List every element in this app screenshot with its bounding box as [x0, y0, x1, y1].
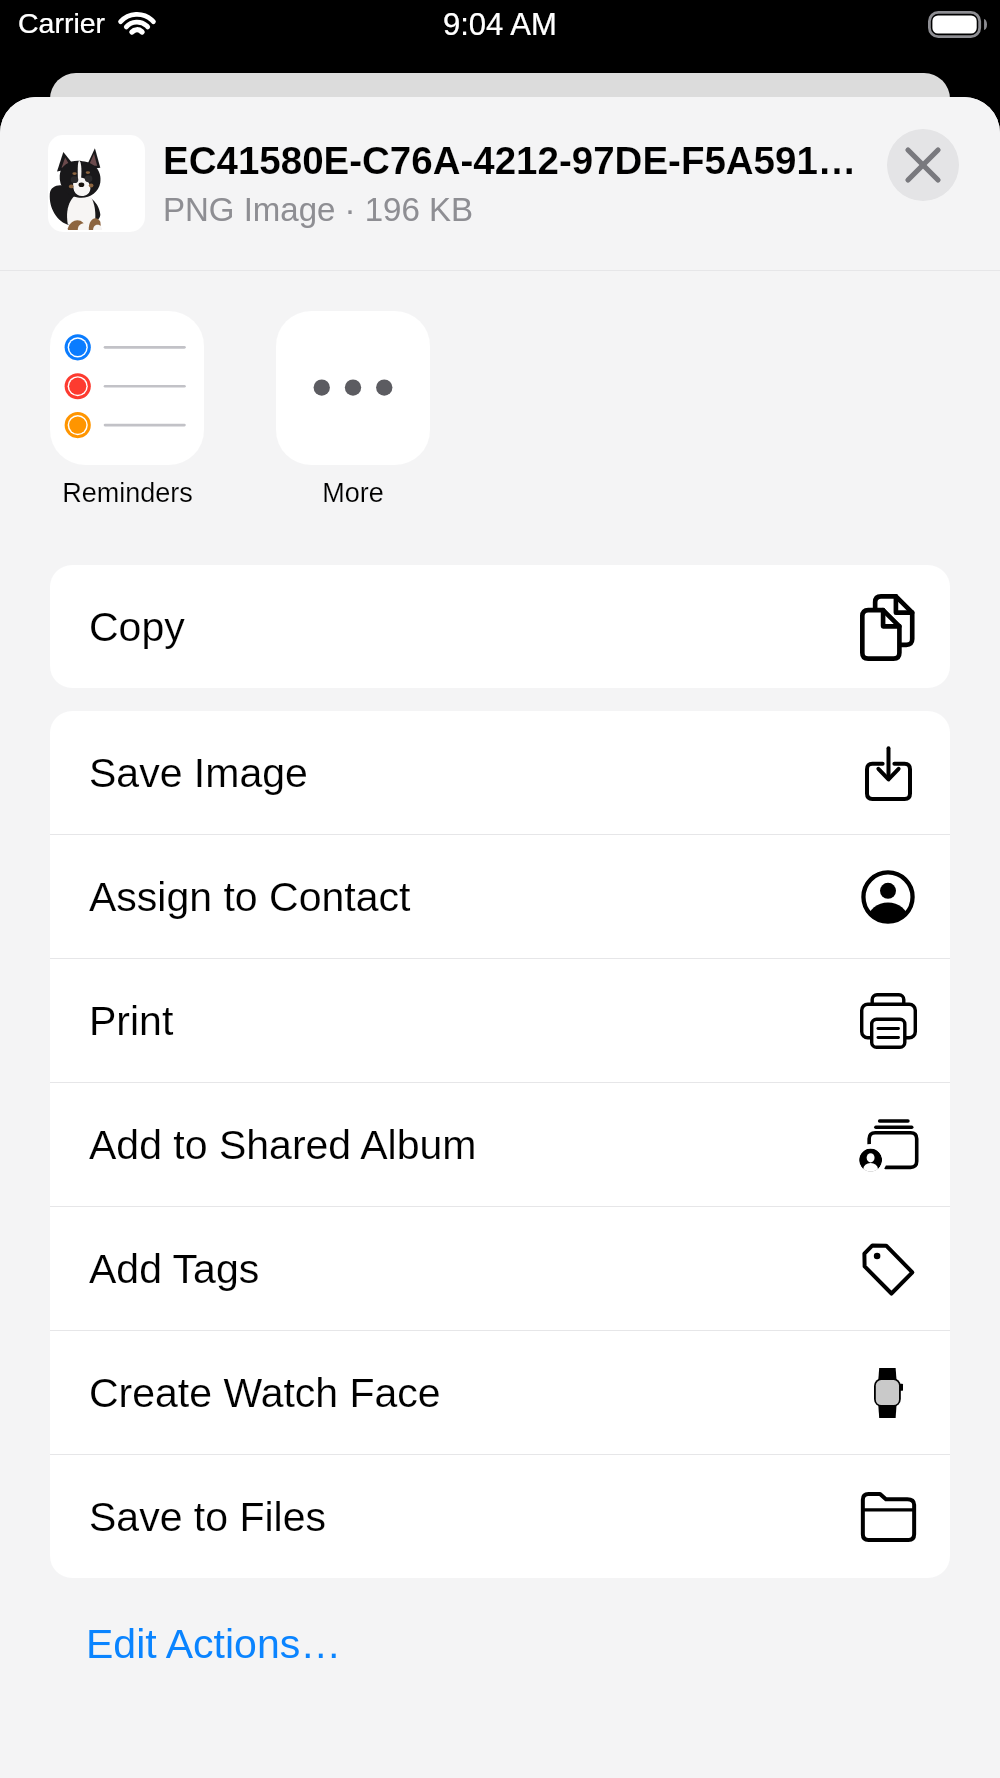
staticText: Add to Shared Album: [89, 1122, 477, 1168]
staticText: Print: [89, 998, 174, 1044]
button[interactable]: Add to Shared Album: [50, 1083, 950, 1206]
staticText: 9:04 AM: [443, 7, 557, 42]
button[interactable]: Create Watch Face: [50, 1331, 950, 1454]
staticText: Create Watch Face: [89, 1370, 441, 1416]
button[interactable]: Assign to Contact: [50, 835, 950, 958]
staticText: EC41580E-C76A-4212-97DE-F5A591…: [163, 139, 857, 182]
staticText: Edit Actions…: [86, 1621, 342, 1667]
button[interactable]: Copy: [50, 565, 950, 688]
button[interactable]: Save to Files: [50, 1455, 950, 1578]
staticText: Carrier: [18, 7, 106, 39]
staticText: More: [322, 478, 384, 508]
staticText: Reminders: [62, 478, 193, 508]
staticText: Add Tags: [89, 1246, 260, 1292]
button[interactable]: Close: [887, 129, 959, 201]
button[interactable]: Print: [50, 959, 950, 1082]
button[interactable]: Reminders: [50, 311, 204, 508]
staticText: Save to Files: [89, 1494, 326, 1540]
staticText: Save Image: [89, 750, 308, 796]
staticText: Copy: [89, 604, 185, 650]
staticText: Assign to Contact: [89, 874, 411, 920]
button[interactable]: Save Image: [50, 711, 950, 834]
button[interactable]: Edit Actions…: [0, 1608, 1000, 1683]
staticText: PNG Image · 196 KB: [163, 191, 473, 228]
button[interactable]: Add Tags: [50, 1207, 950, 1330]
button[interactable]: More: [276, 311, 430, 508]
